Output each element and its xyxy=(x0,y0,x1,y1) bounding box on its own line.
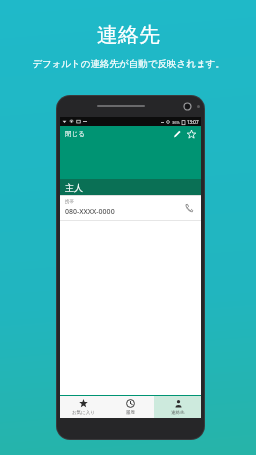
button[interactable]: お気に入りに追加 xyxy=(184,127,198,141)
button[interactable]: 閉じる xyxy=(63,129,87,139)
staticText: 13:07 xyxy=(187,119,199,125)
staticText: 閉じる xyxy=(65,130,85,138)
staticText: 連絡先 xyxy=(97,22,160,48)
button[interactable]: 電話をかける xyxy=(182,201,196,215)
staticText: 080-XXXX-0000 xyxy=(65,207,115,217)
staticText: 主人 xyxy=(65,182,83,193)
button[interactable]: 編集 xyxy=(170,127,184,141)
button[interactable]: 携帯 xyxy=(60,196,201,220)
button[interactable]: 履歴 xyxy=(107,396,154,418)
staticText: 連絡先 xyxy=(171,410,185,416)
button[interactable]: 連絡先 xyxy=(154,396,201,418)
button[interactable]: 主人 xyxy=(60,179,201,195)
staticText: デフォルトの連絡先が自動で反映されます。 xyxy=(32,58,225,70)
staticText: 携帯 xyxy=(65,199,74,205)
staticText: お気に入り xyxy=(72,410,95,416)
staticText: 36% xyxy=(172,120,180,125)
button[interactable]: お気に入り xyxy=(60,396,107,418)
staticText: 履歴 xyxy=(126,410,135,416)
